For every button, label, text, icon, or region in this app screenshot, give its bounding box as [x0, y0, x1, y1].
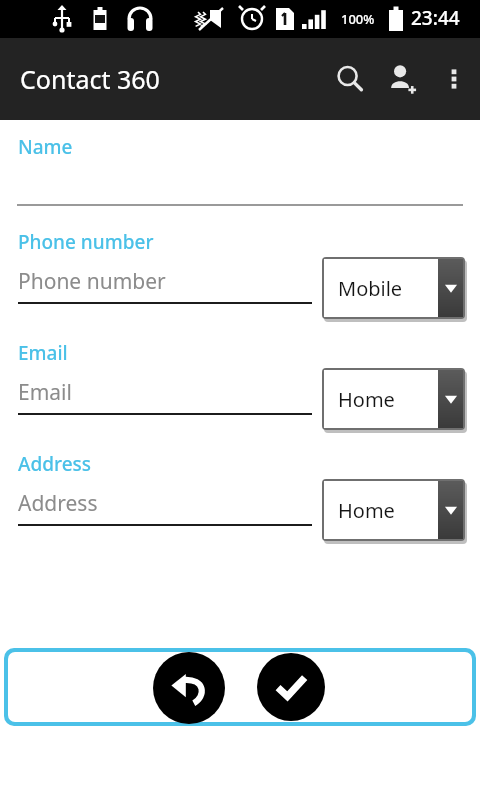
- button[interactable]: Home: [322, 479, 470, 547]
- button[interactable]: Save: [257, 653, 325, 721]
- staticText: Contact 360: [20, 62, 160, 96]
- staticText: Phone number: [18, 229, 154, 255]
- staticText: Home: [338, 497, 395, 524]
- button[interactable]: Phone number: [18, 267, 312, 304]
- staticText: 23:44: [411, 5, 460, 31]
- staticText: Home: [338, 386, 395, 413]
- button[interactable]: Address: [18, 489, 312, 526]
- staticText: Email: [18, 340, 68, 366]
- staticText: Email: [18, 378, 72, 407]
- button[interactable]: Add contact: [376, 53, 428, 105]
- button[interactable]: Email: [18, 378, 312, 415]
- staticText: Address: [18, 489, 98, 518]
- button[interactable]: Mobile: [322, 257, 470, 325]
- staticText: Mobile: [338, 275, 403, 302]
- staticText: Address: [18, 451, 92, 477]
- staticText: 100%: [341, 10, 375, 28]
- button[interactable]: Search: [324, 53, 376, 105]
- button[interactable]: Back: [153, 652, 225, 724]
- button[interactable]: Home: [322, 368, 470, 436]
- button[interactable]: More options: [428, 53, 480, 105]
- staticText: Name: [18, 134, 73, 160]
- staticText: Phone number: [18, 267, 166, 296]
